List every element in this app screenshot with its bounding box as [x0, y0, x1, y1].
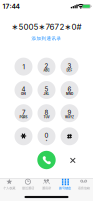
- staticText: 9: [67, 109, 71, 116]
- button[interactable]: 最近通话: [19, 178, 37, 193]
- staticText: ∗5005∗7672∗0#: [11, 22, 81, 32]
- staticText: 7: [22, 109, 25, 116]
- button[interactable]: 语音信箱: [74, 178, 93, 193]
- staticText: 拨号键盘: [59, 186, 71, 190]
- staticText: 17:44: [2, 2, 19, 10]
- button[interactable]: 6: [60, 81, 78, 99]
- staticText: 最近通话: [22, 186, 34, 190]
- button[interactable]: Call: [37, 151, 56, 169]
- button[interactable]: Delete: [64, 152, 81, 169]
- button[interactable]: 拨号键盘: [56, 178, 74, 193]
- button[interactable]: 4: [14, 81, 32, 99]
- button[interactable]: Pound: [60, 127, 78, 145]
- staticText: 1: [22, 63, 24, 71]
- staticText: 语音信箱: [78, 186, 90, 190]
- staticText: 8: [44, 109, 48, 116]
- button[interactable]: 2: [37, 58, 55, 76]
- staticText: +: [45, 138, 47, 142]
- staticText: 5: [44, 86, 48, 93]
- staticText: WXYZ: [65, 115, 74, 119]
- staticText: PQRS: [19, 115, 27, 119]
- staticText: 3: [67, 62, 71, 70]
- staticText: GHI: [21, 92, 26, 96]
- staticText: 0: [44, 132, 48, 139]
- button[interactable]: 个人收藏: [0, 178, 19, 193]
- button[interactable]: 7: [14, 104, 32, 122]
- button[interactable]: 8: [37, 104, 55, 122]
- staticText: ABC: [43, 69, 49, 72]
- staticText: 6: [67, 86, 71, 93]
- button[interactable]: 9: [60, 104, 78, 122]
- button[interactable]: 添加到通讯录: [30, 35, 62, 41]
- staticText: 2: [44, 62, 48, 70]
- staticText: JKL: [43, 92, 49, 96]
- button[interactable]: 3: [60, 58, 78, 76]
- staticText: 4: [21, 86, 25, 93]
- staticText: 通讯录: [42, 186, 51, 190]
- staticText: DEF: [66, 69, 72, 72]
- button[interactable]: 0: [37, 127, 55, 145]
- staticText: MNO: [66, 92, 73, 96]
- button[interactable]: Star: [14, 127, 32, 145]
- button[interactable]: 通讯录: [37, 178, 56, 193]
- staticText: TUV: [43, 115, 49, 119]
- staticText: 添加到通讯录: [31, 35, 61, 41]
- staticText: 个人收藏: [3, 186, 15, 190]
- button[interactable]: 5: [37, 81, 55, 99]
- button[interactable]: 1: [14, 58, 32, 76]
